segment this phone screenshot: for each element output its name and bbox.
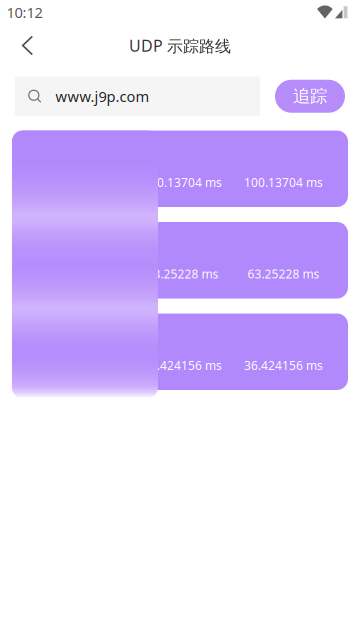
button[interactable]: Back	[6, 24, 48, 66]
staticText: 36.424156 ms	[244, 357, 323, 373]
staticText: UDP 示踪路线	[129, 35, 231, 56]
staticText: 63.25228 ms	[146, 266, 218, 282]
staticText: 36.424156 ms	[143, 357, 222, 373]
button[interactable]: 追踪	[275, 80, 345, 113]
staticText: 100.13704 ms	[244, 174, 323, 190]
staticText: 10:12	[6, 2, 42, 22]
staticText: 36.424156 ms	[42, 357, 121, 373]
staticText: 63.25228 ms	[247, 266, 319, 282]
staticText: www.j9p.com	[55, 86, 149, 106]
button[interactable]: www.j9p.com	[15, 76, 260, 116]
staticText: 100.13704 ms	[143, 174, 222, 190]
staticText: 追踪	[293, 86, 327, 107]
